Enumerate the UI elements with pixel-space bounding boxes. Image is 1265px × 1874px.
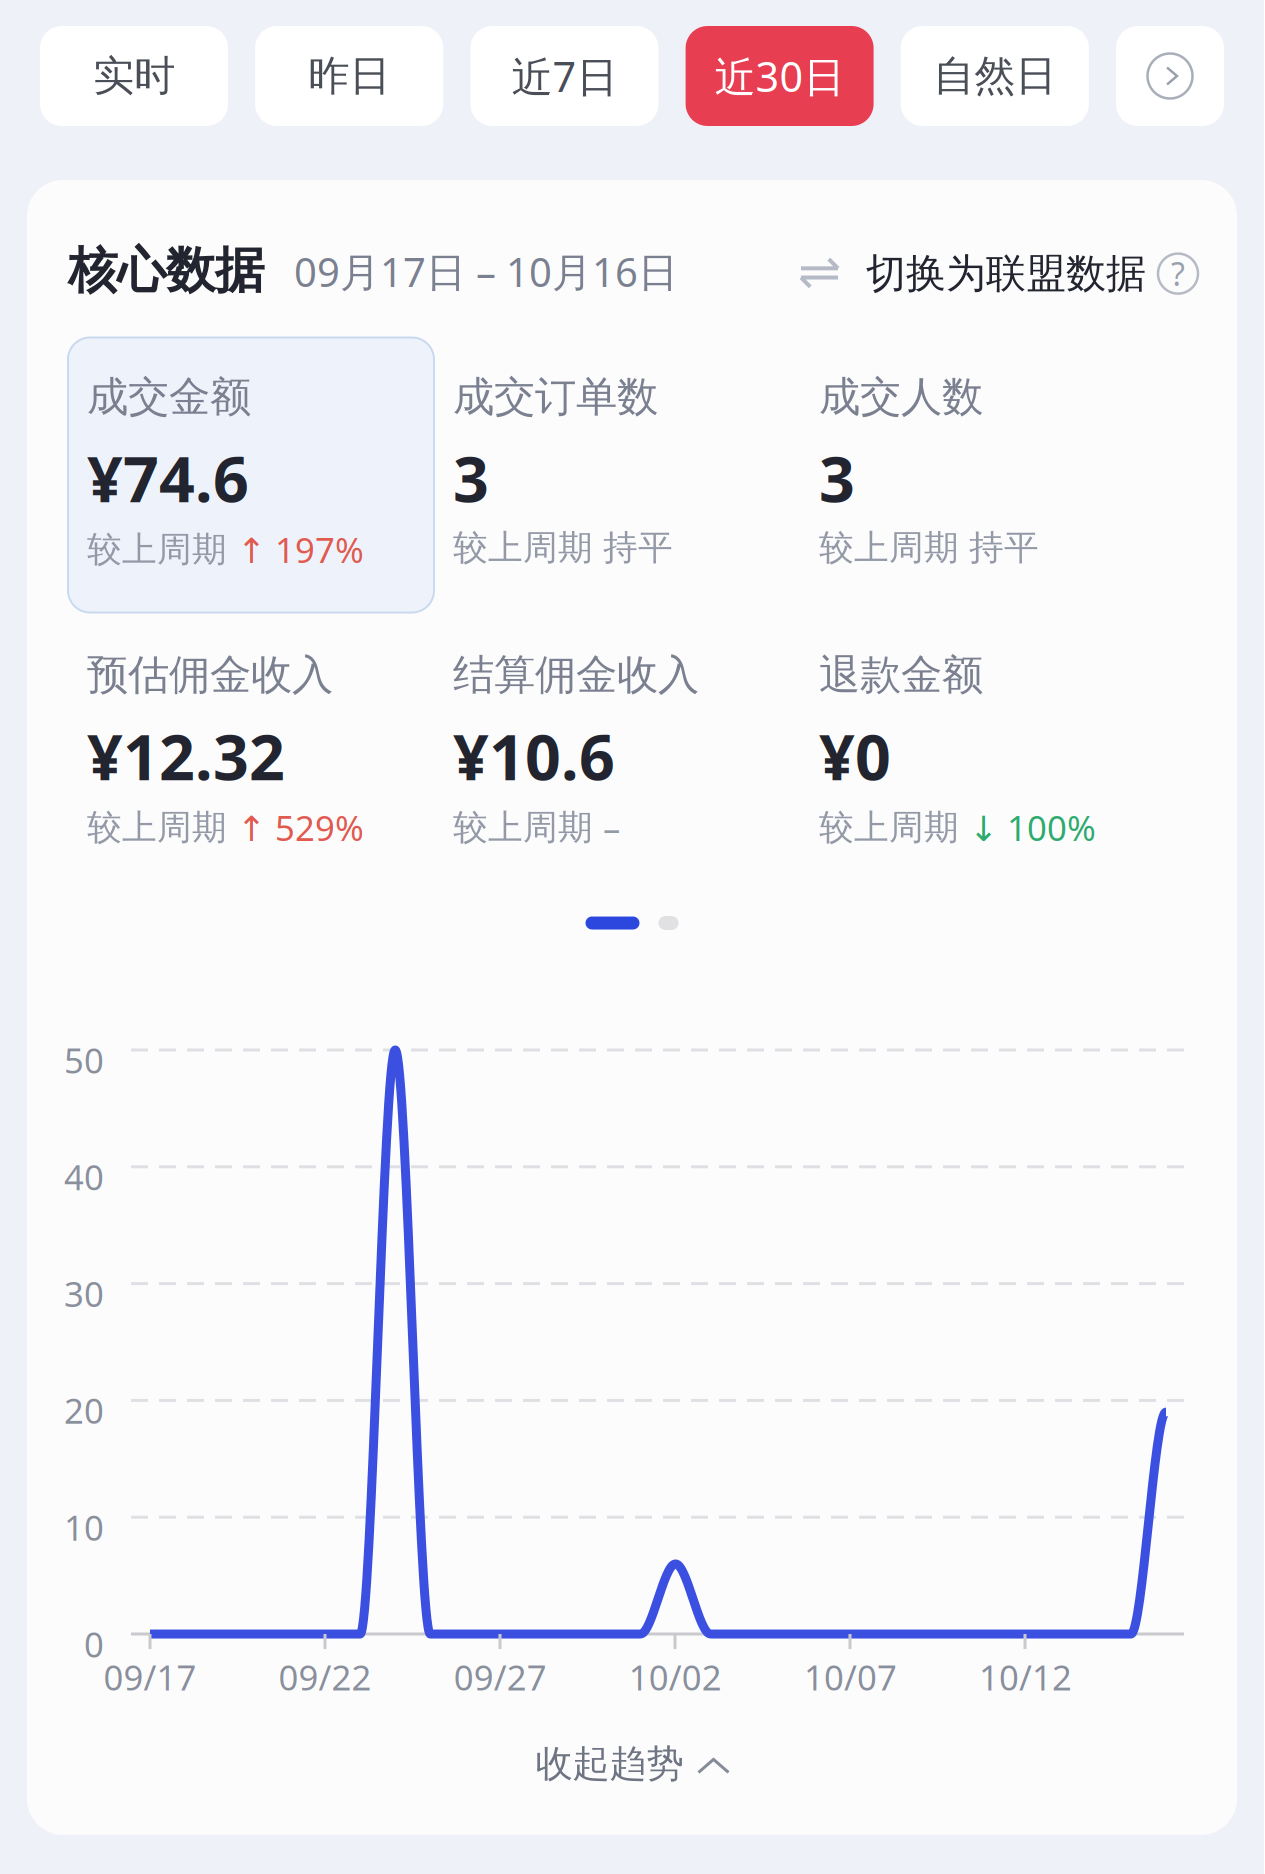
staticText: ↑ 529%: [237, 804, 364, 850]
staticText: 3: [819, 436, 855, 519]
staticText: 收起趋势: [535, 1741, 683, 1787]
staticText: 较上周期: [87, 528, 237, 571]
staticText: 20: [64, 1387, 104, 1433]
staticText: 持平: [969, 526, 1039, 569]
staticText: ?: [1171, 252, 1185, 295]
staticText: 核心数据: [68, 240, 264, 301]
staticText: 自然日: [933, 51, 1056, 101]
button[interactable]: 昨日: [255, 26, 443, 126]
staticText: 10/02: [629, 1654, 722, 1700]
staticText: 较上周期: [819, 806, 969, 849]
staticText: 成交人数: [819, 371, 983, 422]
staticText: ¥0: [819, 714, 891, 797]
staticText: 50: [64, 1037, 104, 1083]
staticText: 较上周期: [87, 806, 237, 849]
staticText: ¥12.32: [87, 714, 285, 797]
staticText: 近7日: [511, 49, 617, 103]
staticText: 持平: [603, 526, 673, 569]
button[interactable]: 自然日: [901, 26, 1089, 126]
staticText: 成交金额: [87, 371, 251, 422]
staticText: 09/22: [279, 1654, 372, 1700]
button[interactable]: 预估佣金收入: [68, 615, 434, 890]
staticText: 实时: [93, 51, 175, 101]
staticText: 昨日: [308, 51, 390, 101]
staticText: 结算佣金收入: [453, 649, 699, 700]
staticText: 切换为联盟数据: [854, 249, 1158, 298]
button[interactable]: 退款金额: [800, 615, 1166, 890]
button[interactable]: 实时: [40, 26, 228, 126]
staticText: 09/27: [454, 1654, 547, 1700]
staticText: ¥74.6: [87, 436, 249, 519]
staticText: ¥10.6: [453, 714, 615, 797]
button[interactable]: 近7日: [470, 26, 658, 126]
staticText: 近30日: [715, 49, 845, 103]
staticText: 0: [84, 1621, 104, 1667]
button[interactable]: 收起趋势: [27, 1694, 1237, 1835]
staticText: ↑ 197%: [237, 526, 364, 572]
button[interactable]: 成交人数: [800, 337, 1166, 612]
staticText: 3: [453, 436, 489, 519]
staticText: 09/17: [103, 1654, 196, 1700]
staticText: 10/07: [804, 1654, 897, 1700]
button[interactable]: More date ranges: [1116, 26, 1224, 126]
staticText: 较上周期: [453, 526, 603, 569]
staticText: 10: [64, 1504, 104, 1550]
staticText: 40: [64, 1154, 104, 1200]
staticText: –: [603, 804, 620, 850]
staticText: 10/12: [979, 1654, 1072, 1700]
staticText: 09月17日 – 10月16日: [264, 245, 678, 298]
button[interactable]: 结算佣金收入: [434, 615, 800, 890]
button[interactable]: 成交订单数: [434, 337, 800, 612]
staticText: 预估佣金收入: [87, 649, 333, 700]
button[interactable]: 近30日: [686, 26, 874, 126]
staticText: 较上周期: [453, 806, 603, 849]
staticText: 30: [64, 1271, 104, 1317]
button[interactable]: 成交金额: [68, 337, 434, 612]
staticText: 成交订单数: [453, 371, 658, 422]
staticText: 较上周期: [819, 526, 969, 569]
button[interactable]: 切换为联盟数据: [801, 249, 1198, 298]
staticText: 退款金额: [819, 649, 983, 700]
staticText: ↓ 100%: [969, 804, 1096, 850]
